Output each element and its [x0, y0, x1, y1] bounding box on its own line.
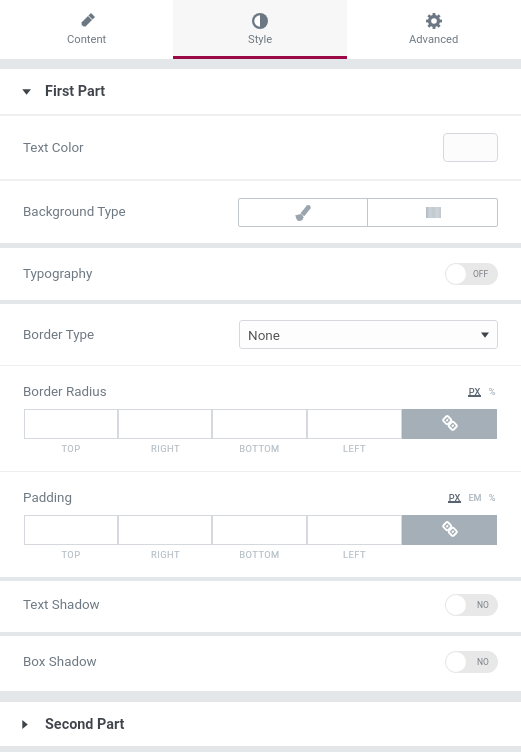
staticText: %: [488, 492, 496, 503]
staticText: Text Shadow: [23, 597, 100, 613]
staticText: Advanced: [409, 33, 459, 46]
staticText: Border Radius: [23, 384, 107, 400]
staticText: OFF: [473, 269, 489, 279]
staticText: Border Type: [23, 327, 95, 343]
button[interactable]: Second Part: [0, 702, 521, 746]
button[interactable]: Pick text color: [443, 133, 498, 162]
button[interactable]: Link values together: [402, 409, 497, 439]
staticText: LEFT: [343, 549, 366, 560]
button[interactable]: %: [488, 386, 496, 399]
staticText: RIGHT: [151, 549, 180, 560]
button[interactable]: [307, 409, 402, 439]
button[interactable]: NO: [445, 651, 498, 673]
staticText: EM: [468, 492, 481, 503]
button[interactable]: [212, 409, 307, 439]
staticText: TOP: [61, 549, 81, 560]
button[interactable]: [24, 409, 118, 439]
staticText: BOTTOM: [239, 549, 280, 560]
staticText: TOP: [61, 443, 81, 454]
button[interactable]: OFF: [445, 263, 498, 285]
staticText: LEFT: [343, 443, 366, 454]
button[interactable]: NO: [445, 594, 498, 616]
staticText: Typography: [23, 266, 93, 282]
button[interactable]: First Part: [0, 69, 521, 114]
button[interactable]: %: [488, 492, 496, 505]
staticText: Background Type: [23, 204, 126, 220]
button[interactable]: PX: [448, 492, 461, 505]
staticText: PX: [468, 386, 481, 397]
button[interactable]: Style: [173, 0, 347, 59]
staticText: Padding: [23, 490, 72, 506]
button[interactable]: [307, 515, 402, 545]
button[interactable]: Content: [0, 0, 173, 59]
staticText: Box Shadow: [23, 654, 97, 670]
staticText: First Part: [45, 83, 106, 100]
staticText: NO: [477, 657, 489, 667]
button[interactable]: [24, 515, 118, 545]
button[interactable]: EM: [468, 492, 481, 505]
button[interactable]: PX: [468, 386, 481, 399]
button[interactable]: Link values together: [402, 515, 497, 545]
staticText: NO: [477, 600, 489, 610]
button[interactable]: Gradient background: [368, 198, 498, 227]
button[interactable]: Advanced: [347, 0, 521, 59]
button[interactable]: [212, 515, 307, 545]
staticText: Content: [67, 33, 107, 46]
staticText: RIGHT: [151, 443, 180, 454]
button[interactable]: Classic background: [238, 198, 367, 227]
staticText: None: [248, 327, 280, 343]
button[interactable]: None: [239, 320, 498, 349]
staticText: Text Color: [23, 140, 84, 156]
staticText: BOTTOM: [239, 443, 280, 454]
button[interactable]: [118, 409, 212, 439]
staticText: Style: [248, 33, 273, 46]
staticText: PX: [448, 492, 461, 503]
staticText: %: [488, 386, 496, 397]
button[interactable]: [118, 515, 212, 545]
staticText: Second Part: [45, 716, 125, 733]
